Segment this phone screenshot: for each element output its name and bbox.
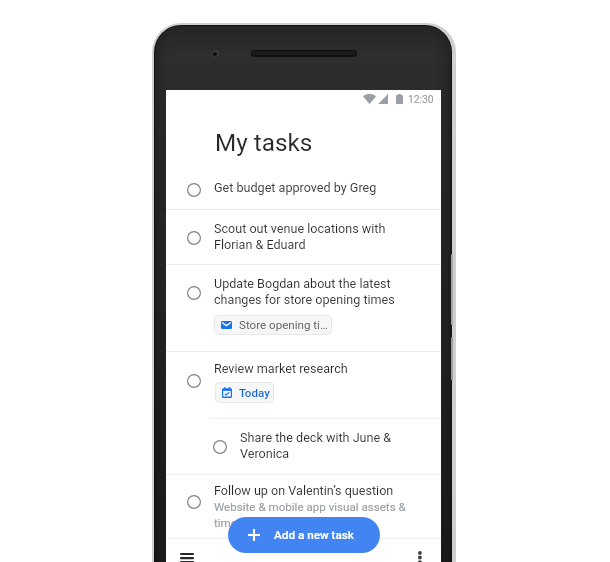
staticText: My tasks bbox=[215, 128, 313, 156]
staticText: Follow up on Valentin’s question bbox=[214, 483, 394, 499]
button[interactable]: Mark task complete bbox=[166, 351, 441, 418]
staticText: Add a new task bbox=[274, 528, 354, 542]
button[interactable]: Mark task complete bbox=[187, 286, 201, 300]
staticText: 12:30 bbox=[408, 93, 434, 105]
staticText: Review market research bbox=[214, 361, 348, 377]
staticText: Today bbox=[239, 386, 270, 400]
staticText: Scout out venue locations with bbox=[214, 221, 386, 237]
staticText: Florian & Eduard bbox=[214, 237, 306, 253]
button[interactable]: Mark task complete bbox=[166, 169, 441, 209]
staticText: Website & mobile app visual assets & tim… bbox=[214, 499, 406, 531]
button[interactable]: Mark task complete bbox=[166, 264, 441, 350]
staticText: Store opening ti… bbox=[239, 318, 328, 332]
button[interactable]: Mark task complete bbox=[166, 418, 441, 475]
staticText: Veronica bbox=[240, 446, 290, 462]
button[interactable]: Mark task complete bbox=[187, 374, 201, 388]
button[interactable]: Mark task complete bbox=[166, 209, 441, 265]
button[interactable]: Mark task complete bbox=[187, 495, 201, 509]
button[interactable]: Today bbox=[215, 382, 274, 403]
staticText: Get budget approved by Greg bbox=[214, 180, 377, 196]
staticText: Update Bogdan about the latest bbox=[214, 276, 391, 292]
staticText: changes for store opening times bbox=[214, 292, 395, 308]
button[interactable]: Mark task complete bbox=[187, 183, 201, 197]
button[interactable]: Mark task complete bbox=[166, 474, 441, 544]
button[interactable]: Store opening ti… bbox=[214, 315, 332, 335]
button[interactable]: Mark task complete bbox=[213, 440, 227, 454]
button[interactable]: More options bbox=[405, 538, 439, 562]
button[interactable]: Menu bbox=[168, 538, 212, 562]
button[interactable]: Add a new task bbox=[228, 517, 380, 553]
staticText: Share the deck with June & bbox=[240, 430, 392, 446]
button[interactable]: Mark task complete bbox=[187, 231, 201, 245]
